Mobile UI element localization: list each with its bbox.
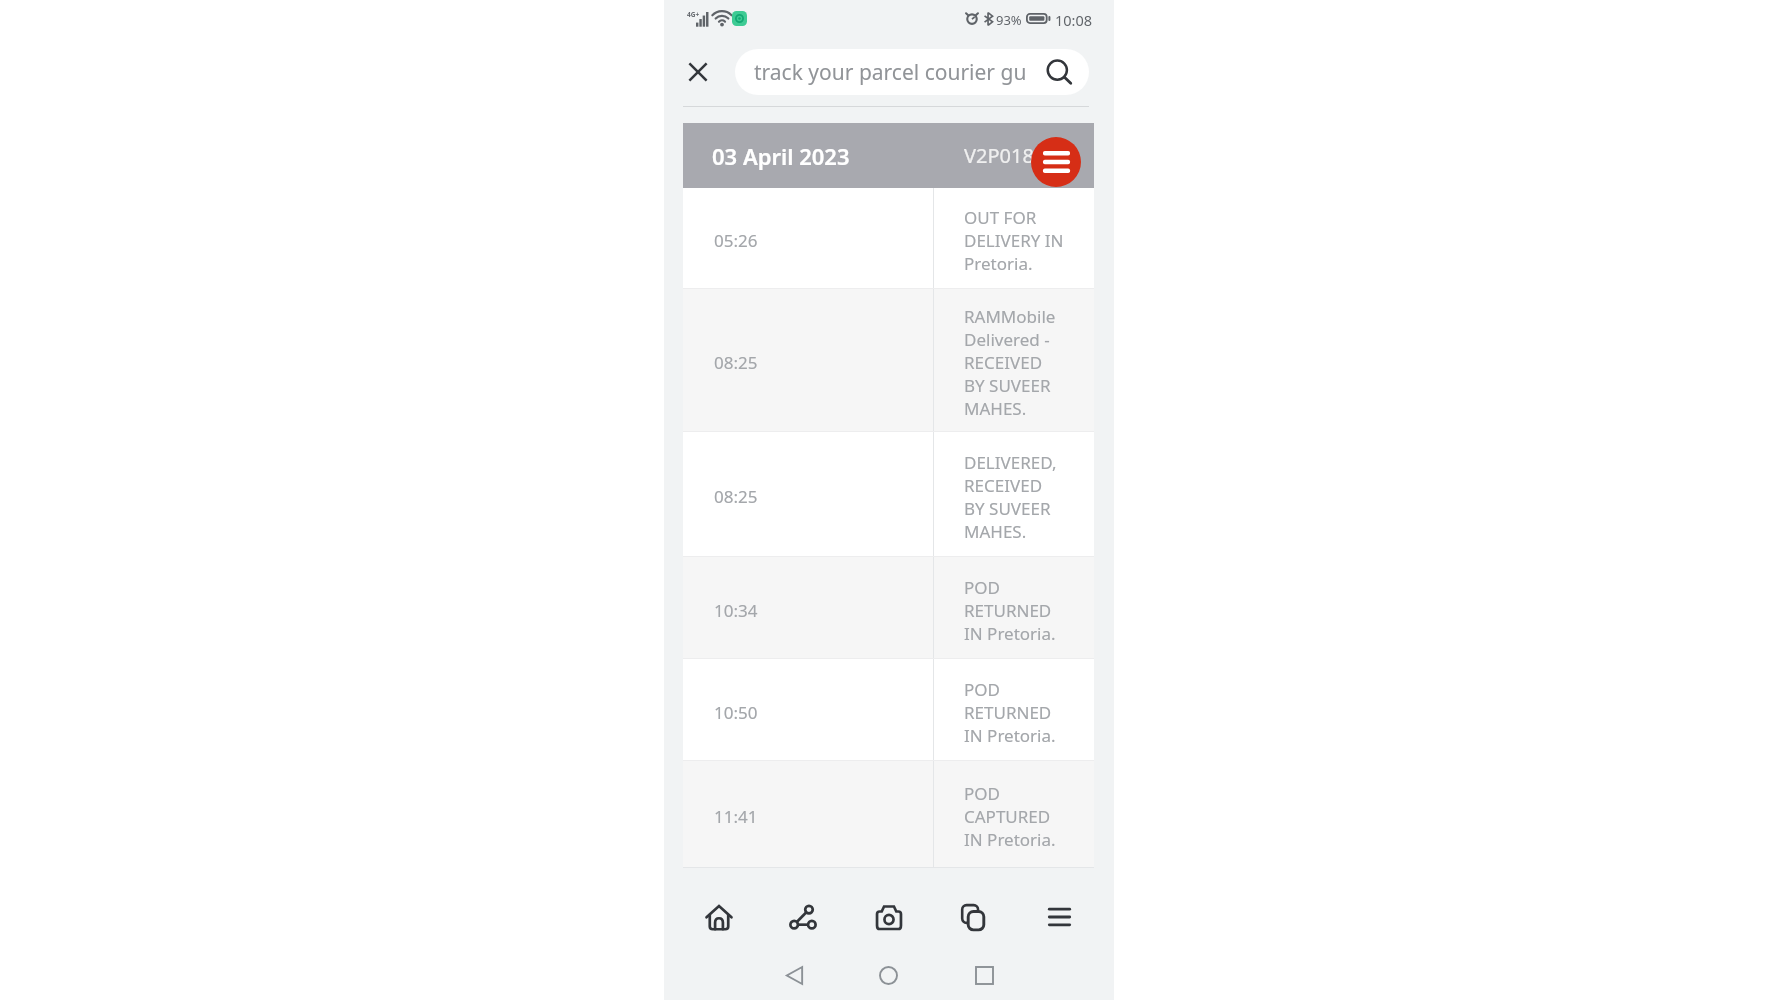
staticText: 4G+: [687, 10, 700, 19]
staticText: DELIVERY IN: [964, 229, 1064, 252]
staticText: RAMMobile: [964, 305, 1056, 328]
staticText: IN Pretoria.: [964, 724, 1056, 747]
staticText: POD: [964, 782, 1000, 805]
staticText: RECEIVED: [964, 351, 1043, 374]
staticText: RECEIVED: [964, 474, 1043, 497]
staticText: V2P0189: [964, 142, 1046, 169]
staticText: MAHES.: [964, 520, 1027, 543]
staticText: 93%: [996, 11, 1022, 29]
staticText: IN Pretoria.: [964, 828, 1056, 851]
staticText: 03 April 2023: [712, 141, 850, 171]
staticText: 10:08: [1055, 10, 1093, 30]
button[interactable]: 10:50: [683, 659, 1094, 761]
button[interactable]: Share: [778, 892, 828, 942]
staticText: 05:26: [714, 229, 758, 252]
staticText: MAHES.: [964, 397, 1027, 420]
staticText: RETURNED: [964, 701, 1052, 724]
staticText: 08:25: [714, 485, 758, 508]
button[interactable]: 08:25: [683, 289, 1094, 432]
staticText: Delivered -: [964, 328, 1050, 351]
button[interactable]: Home: [694, 892, 744, 942]
staticText: CAPTURED: [964, 805, 1051, 828]
button[interactable]: 11:41: [683, 761, 1094, 868]
staticText: OUT FOR: [964, 206, 1037, 229]
button[interactable]: 08:25: [683, 432, 1094, 557]
staticText: 11:41: [714, 805, 758, 828]
staticText: BY SUVEER: [964, 497, 1051, 520]
button[interactable]: Home: [865, 952, 911, 998]
staticText: DELIVERED,: [964, 451, 1057, 474]
button[interactable]: Tabs: [948, 892, 998, 942]
staticText: 10:50: [714, 701, 758, 724]
button[interactable]: Camera: [864, 892, 914, 942]
staticText: 08:25: [714, 351, 758, 374]
staticText: POD: [964, 678, 1000, 701]
staticText: 10:34: [714, 599, 758, 622]
button[interactable]: Close: [673, 47, 723, 97]
staticText: track your parcel courier gu: [754, 58, 1027, 87]
staticText: RETURNED: [964, 599, 1052, 622]
button[interactable]: Menu: [1034, 892, 1084, 942]
button[interactable]: track your parcel courier gu: [735, 49, 1089, 95]
button[interactable]: 05:26: [683, 188, 1094, 289]
button[interactable]: Recents: [961, 952, 1007, 998]
button[interactable]: Menu: [1031, 137, 1081, 187]
button[interactable]: Back: [771, 952, 817, 998]
staticText: BY SUVEER: [964, 374, 1051, 397]
staticText: POD: [964, 576, 1000, 599]
staticText: Pretoria.: [964, 252, 1033, 275]
staticText: IN Pretoria.: [964, 622, 1056, 645]
button[interactable]: 10:34: [683, 557, 1094, 659]
